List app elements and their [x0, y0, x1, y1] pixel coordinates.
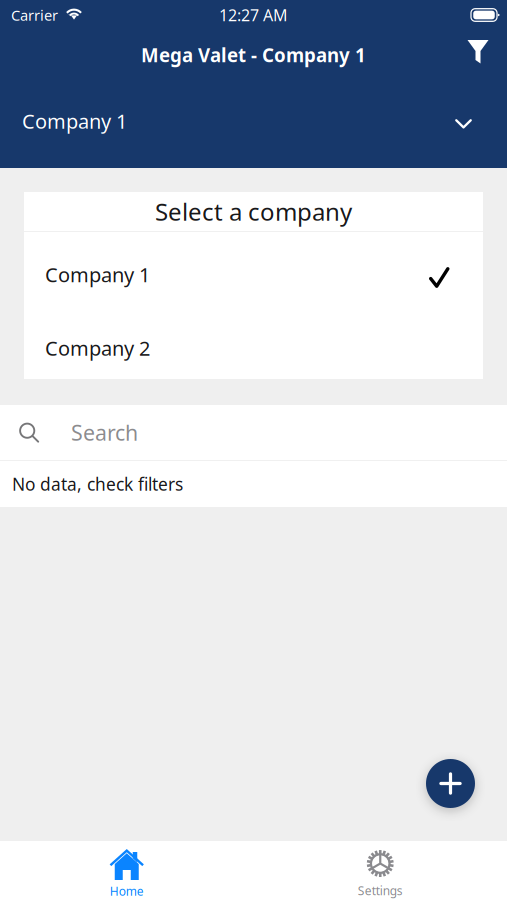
- staticText: Mega Valet - Company 1: [141, 43, 366, 67]
- staticText: No data, check filters: [12, 472, 183, 495]
- staticText: 12:27 AM: [219, 4, 288, 26]
- staticText: Company 1: [45, 261, 150, 288]
- staticText: Company 1: [22, 108, 127, 134]
- button[interactable]: Home: [0, 841, 253, 900]
- button[interactable]: Search: [0, 405, 507, 460]
- button[interactable]: Add: [426, 759, 475, 808]
- staticText: Settings: [358, 882, 403, 898]
- staticText: Select a company: [155, 196, 352, 227]
- button[interactable]: Settings: [253, 841, 507, 900]
- button[interactable]: Company 1: [0, 80, 507, 168]
- button[interactable]: Company 2: [24, 323, 483, 379]
- staticText: Company 2: [45, 335, 150, 361]
- button[interactable]: Filter: [456, 30, 500, 80]
- staticText: Carrier: [11, 5, 58, 25]
- staticText: Home: [110, 883, 144, 899]
- staticText: Search: [71, 418, 138, 447]
- button[interactable]: Company 1: [24, 232, 483, 323]
